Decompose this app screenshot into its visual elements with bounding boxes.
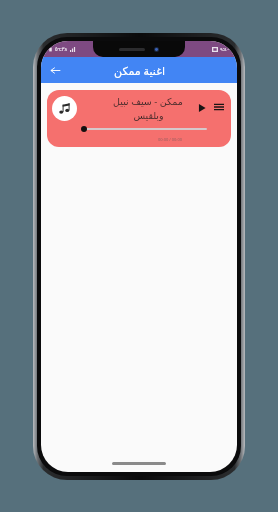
staticText: 00:00 / 00:00	[158, 137, 183, 142]
button[interactable]: Play	[195, 101, 208, 114]
button[interactable]: Seek	[81, 125, 207, 133]
staticText: ٩:٤٠	[220, 46, 230, 53]
button[interactable]: Menu	[212, 100, 226, 114]
staticText: ممكن - سيف نبيل	[113, 95, 183, 108]
button[interactable]: ممكن - سيف نبيل	[47, 90, 231, 147]
button[interactable]: Back	[45, 60, 65, 80]
staticText: وبلقيس	[133, 110, 164, 121]
staticText: ٥٦:٣٨	[55, 46, 68, 53]
staticText: اغنية ممكن	[114, 63, 165, 78]
